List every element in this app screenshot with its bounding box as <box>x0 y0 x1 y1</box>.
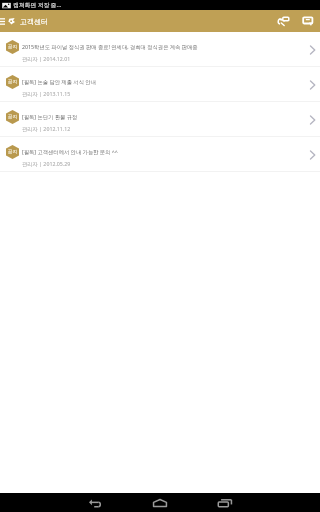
staticText: 2015학년도 파이널 정식권 판매 종료! 연세대, 경희대 정식권은 계속 … <box>22 43 198 50</box>
staticText: [필독] 고객센터에서 안내 가능한 문의 ^^ <box>22 148 118 155</box>
button[interactable]: 공지 <box>0 102 320 137</box>
button[interactable]: 메뉴 <box>0 10 6 32</box>
staticText: 공지 <box>8 44 18 50</box>
button[interactable]: 공지 <box>0 32 320 67</box>
staticText: 공지 <box>8 149 18 155</box>
button[interactable]: Recents <box>203 493 247 512</box>
staticText: 관리자 | 2012.05.29 <box>22 160 71 167</box>
button[interactable]: 공지 <box>0 137 320 172</box>
staticText: 공지 <box>8 114 18 120</box>
button[interactable]: Back <box>73 493 117 512</box>
button[interactable]: 1:1 문의 <box>297 10 319 32</box>
staticText: [필독] 논술 답안 제출 서식 안내 <box>22 78 96 85</box>
staticText: 캡쳐화면 저장 중... <box>13 1 62 9</box>
staticText: 공지 <box>8 79 18 85</box>
button[interactable]: 공지 <box>0 67 320 102</box>
button[interactable]: 전화 문의 <box>272 10 294 32</box>
staticText: 고객센터 <box>20 17 48 26</box>
staticText: 관리자 | 2014.12.01 <box>22 55 71 62</box>
staticText: 관리자 | 2012.11.12 <box>22 125 71 132</box>
button[interactable]: Home <box>138 493 182 512</box>
staticText: 관리자 | 2013.11.15 <box>22 90 71 97</box>
staticText: [필독] 논단기 환불 규정 <box>22 113 78 120</box>
